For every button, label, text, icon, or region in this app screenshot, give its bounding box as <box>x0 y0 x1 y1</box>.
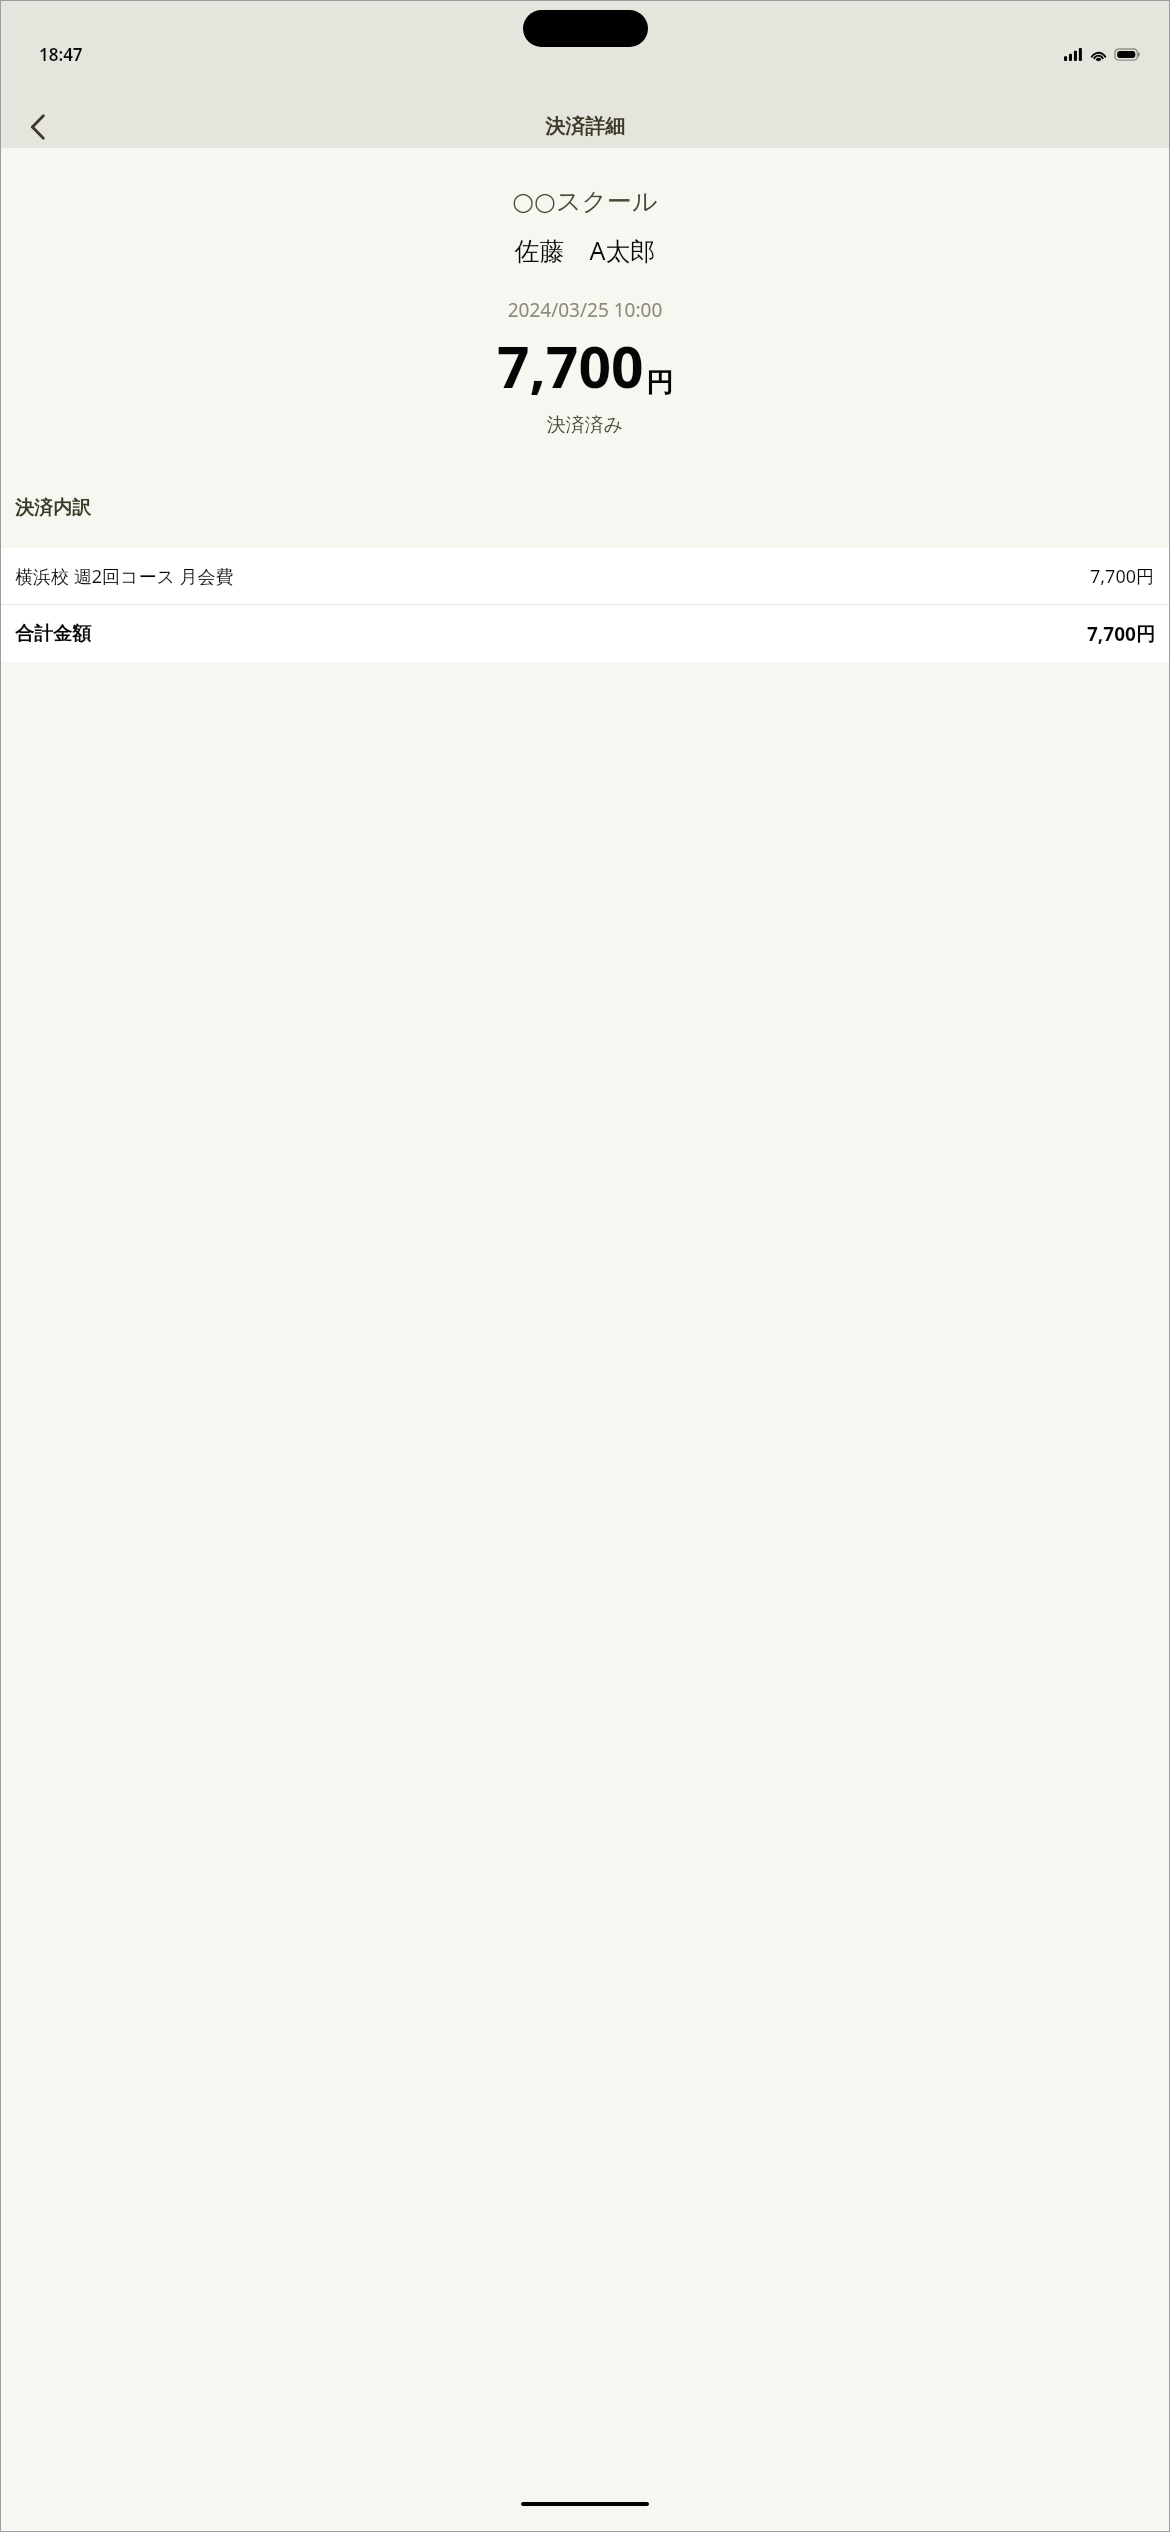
staticText: 2024/03/25 10:00 <box>0 297 1170 323</box>
staticText: 横浜校 週2回コース 月会費 <box>15 564 1090 589</box>
staticText: 7,700円 <box>1090 564 1155 589</box>
staticText: 7,700 <box>497 327 644 405</box>
staticText: 決済内訳 <box>15 496 91 520</box>
staticText: 佐藤 A太郎 <box>0 233 1170 267</box>
staticText: ○○スクール <box>0 186 1170 217</box>
staticText: 7,700円 <box>1087 621 1155 647</box>
staticText: 決済済み <box>0 413 1170 437</box>
button[interactable]: 横浜校 週2回コース 月会費 <box>0 548 1170 604</box>
button[interactable]: 合計金額 <box>0 605 1170 662</box>
staticText: 決済詳細 <box>545 114 625 139</box>
staticText: 18:47 <box>39 43 83 66</box>
staticText: 円 <box>646 366 673 400</box>
staticText: 合計金額 <box>15 622 1087 646</box>
button[interactable]: Back <box>14 105 62 148</box>
